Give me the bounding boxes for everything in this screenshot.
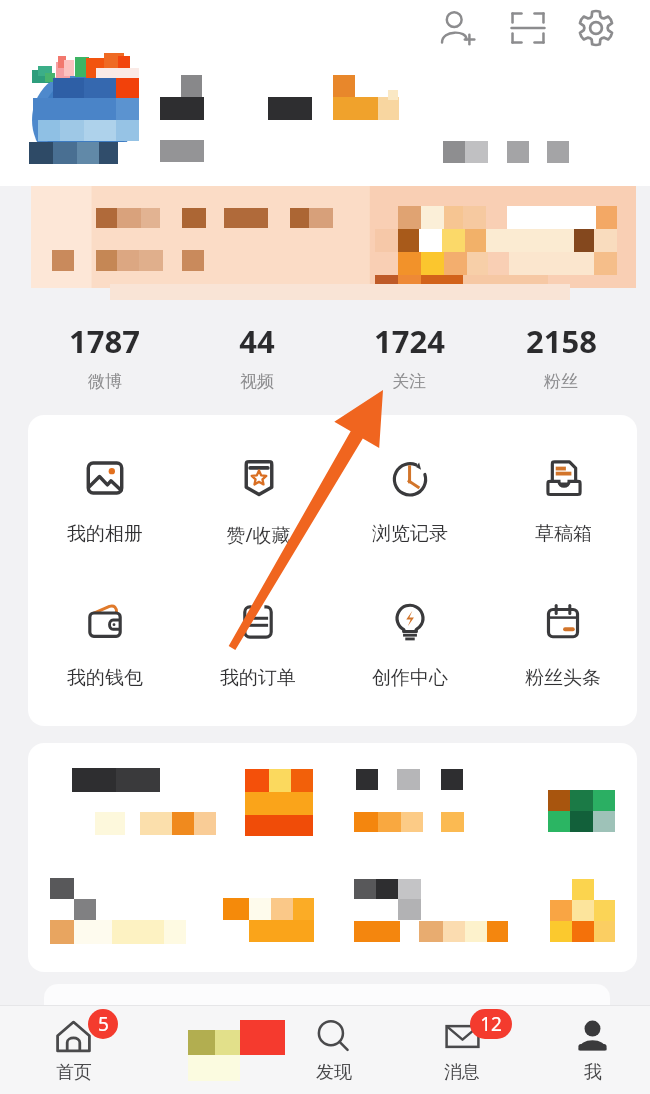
staticText: 首页	[56, 1061, 92, 1084]
staticText: 发现	[316, 1061, 352, 1084]
button[interactable]: 我的相册	[35, 448, 175, 548]
staticText: 5	[98, 1011, 109, 1037]
button[interactable]: 我的订单	[188, 592, 328, 692]
button[interactable]: Profile avatar and name	[24, 50, 424, 170]
button[interactable]: 发现	[278, 1018, 388, 1094]
button[interactable]: 创作中心	[340, 592, 480, 692]
staticText: 粉丝头条	[525, 666, 601, 690]
staticText: 草稿箱	[535, 522, 592, 546]
button[interactable]: Add friend	[434, 4, 482, 52]
button[interactable]: Settings	[572, 4, 620, 52]
staticText: 1787	[69, 320, 140, 362]
button[interactable]: 5	[18, 1018, 128, 1094]
button[interactable]: 草稿箱	[493, 448, 633, 548]
button[interactable]: 赞/收藏	[188, 448, 328, 548]
button[interactable]: 44	[181, 300, 333, 412]
staticText: 44	[239, 320, 275, 362]
button[interactable]: New post	[160, 1018, 270, 1094]
staticText: 我的相册	[67, 522, 143, 546]
staticText: 我的订单	[220, 666, 296, 690]
staticText: 视频	[240, 371, 274, 392]
button[interactable]: 浏览记录	[340, 448, 480, 548]
button[interactable]: 1787	[28, 300, 181, 412]
staticText: 赞/收藏	[226, 522, 291, 548]
staticText: 关注	[392, 371, 426, 392]
button[interactable]: 我	[537, 1018, 647, 1094]
staticText: 浏览记录	[372, 522, 448, 546]
staticText: 我的钱包	[67, 666, 143, 690]
button[interactable]: Membership banner	[31, 186, 636, 290]
button[interactable]: 2158	[485, 300, 637, 412]
button[interactable]: Posts grid	[28, 743, 637, 972]
staticText: 消息	[444, 1061, 480, 1084]
staticText: 2158	[526, 320, 597, 362]
button[interactable]: 1724	[333, 300, 485, 412]
staticText: 创作中心	[372, 666, 448, 690]
button[interactable]: 我的钱包	[35, 592, 175, 692]
staticText: 1724	[374, 320, 445, 362]
staticText: 微博	[88, 371, 122, 392]
button[interactable]: 12	[407, 1018, 517, 1094]
button[interactable]: 粉丝头条	[493, 592, 633, 692]
staticText: 12	[480, 1011, 502, 1037]
staticText: 我	[584, 1061, 602, 1084]
staticText: 粉丝	[544, 371, 578, 392]
button[interactable]: Scan QR code	[504, 4, 552, 52]
